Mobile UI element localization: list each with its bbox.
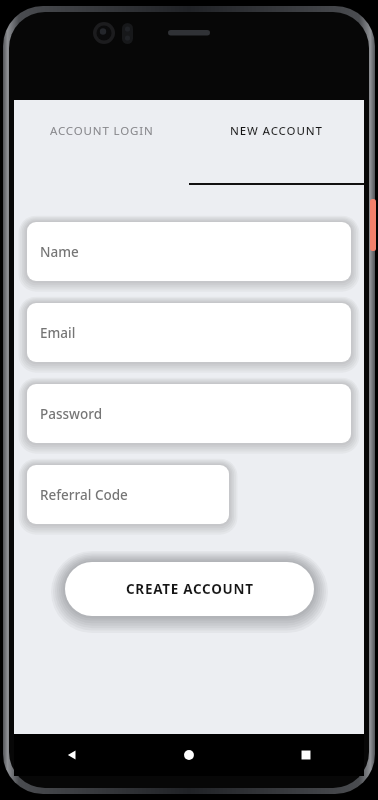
button[interactable]: Name xyxy=(27,222,351,281)
button[interactable]: CREATE ACCOUNT xyxy=(65,562,314,616)
staticText: Referral Code xyxy=(40,486,128,504)
staticText: CREATE ACCOUNT xyxy=(126,580,254,598)
staticText: Email xyxy=(40,324,76,342)
button[interactable]: Referral Code xyxy=(27,465,229,524)
button[interactable]: ACCOUNT LOGIN xyxy=(14,100,189,186)
button[interactable]: Email xyxy=(27,303,351,362)
button[interactable]: Password xyxy=(27,384,351,443)
button[interactable]: Recent apps xyxy=(247,734,364,776)
staticText: Password xyxy=(40,405,103,423)
staticText: ACCOUNT LOGIN xyxy=(50,123,154,139)
staticText: Name xyxy=(40,243,79,261)
button[interactable]: Back xyxy=(14,734,130,776)
staticText: NEW ACCOUNT xyxy=(230,123,323,139)
button[interactable]: Home xyxy=(130,734,247,776)
button[interactable]: NEW ACCOUNT xyxy=(189,100,364,186)
